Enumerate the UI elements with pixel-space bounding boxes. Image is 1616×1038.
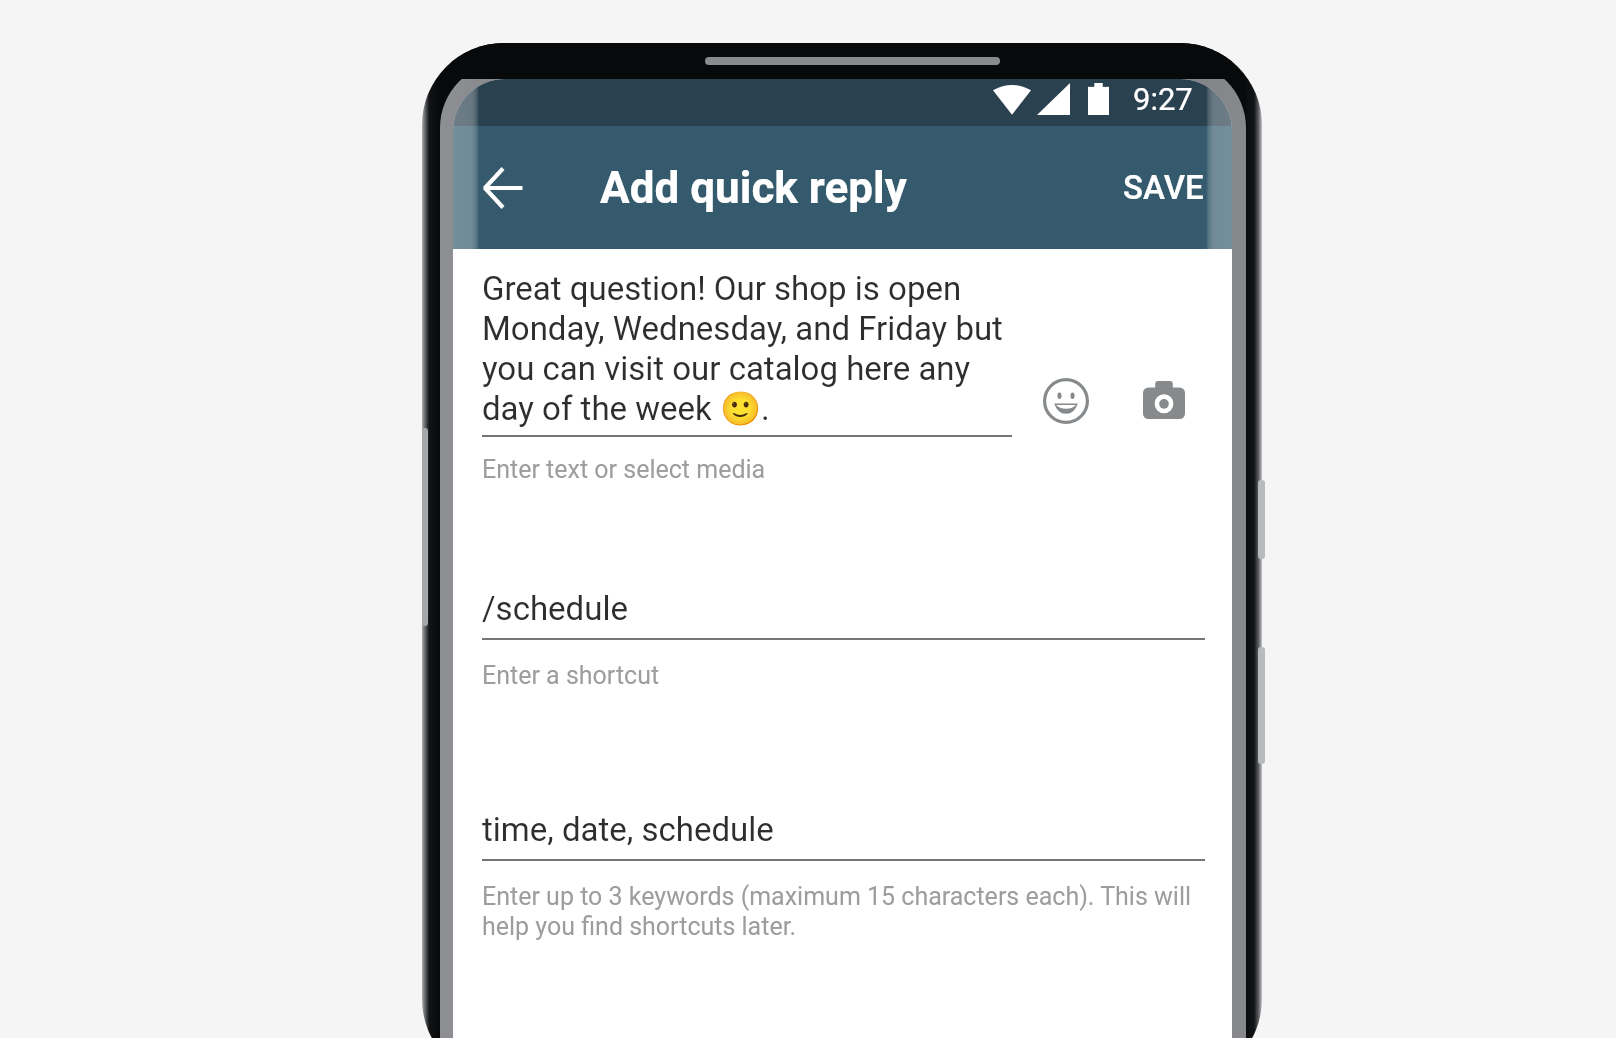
staticText: Enter a shortcut xyxy=(482,661,660,690)
staticText: Great question! Our shop is open Monday,… xyxy=(482,269,1012,428)
staticText: 9:27 xyxy=(1133,81,1193,117)
staticText: SAVE xyxy=(1123,168,1204,207)
button[interactable]: Attach photo xyxy=(1143,381,1185,419)
staticText: /schedule xyxy=(482,589,628,628)
staticText: time, date, schedule xyxy=(482,810,774,849)
button[interactable]: time, date, schedule xyxy=(482,810,1205,941)
button[interactable]: SAVE xyxy=(1099,152,1232,223)
button[interactable]: Back xyxy=(464,149,542,227)
button[interactable]: Great question! Our shop is open Monday,… xyxy=(482,269,1012,484)
staticText: Add quick reply xyxy=(600,162,907,214)
staticText: Enter text or select media xyxy=(482,455,766,484)
button[interactable]: /schedule xyxy=(482,589,1205,690)
button[interactable]: Insert emoji xyxy=(1043,378,1089,424)
staticText: Enter up to 3 keywords (maximum 15 chara… xyxy=(482,882,1205,941)
